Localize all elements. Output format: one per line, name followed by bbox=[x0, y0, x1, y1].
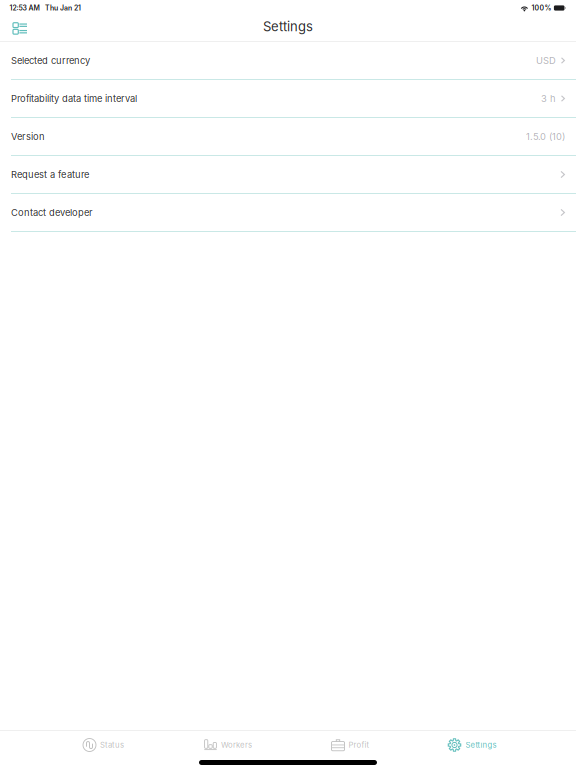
staticText: Profit bbox=[348, 740, 369, 750]
staticText: Settings bbox=[263, 19, 313, 34]
staticText: Contact developer bbox=[11, 207, 93, 218]
staticText: 12:53 AM bbox=[9, 4, 39, 12]
staticText: Settings bbox=[465, 740, 496, 750]
staticText: 100% bbox=[531, 4, 551, 12]
button[interactable]: Status bbox=[77, 732, 130, 758]
staticText: 3 h bbox=[541, 93, 556, 104]
staticText: Request a feature bbox=[11, 169, 89, 180]
button[interactable]: Workers bbox=[198, 732, 258, 758]
staticText: Workers bbox=[221, 740, 252, 750]
staticText: Profitability data time interval bbox=[11, 93, 137, 104]
staticText: Version bbox=[11, 131, 45, 142]
button[interactable]: Profit bbox=[325, 732, 375, 758]
button[interactable]: Profitability data time interval bbox=[0, 80, 576, 118]
button[interactable]: Settings bbox=[441, 732, 502, 758]
staticText: Thu Jan 21 bbox=[45, 4, 81, 12]
button[interactable]: Request a feature bbox=[0, 156, 576, 194]
button[interactable]: Selected currency bbox=[0, 42, 576, 80]
staticText: Selected currency bbox=[11, 55, 90, 66]
staticText: USD bbox=[536, 55, 556, 66]
button[interactable]: Contact developer bbox=[0, 194, 576, 232]
staticText: Status bbox=[100, 740, 124, 750]
staticText: 1.5.0 (10) bbox=[526, 131, 565, 142]
button[interactable]: Show sidebar bbox=[0, 16, 37, 41]
button[interactable]: Version bbox=[0, 118, 576, 156]
